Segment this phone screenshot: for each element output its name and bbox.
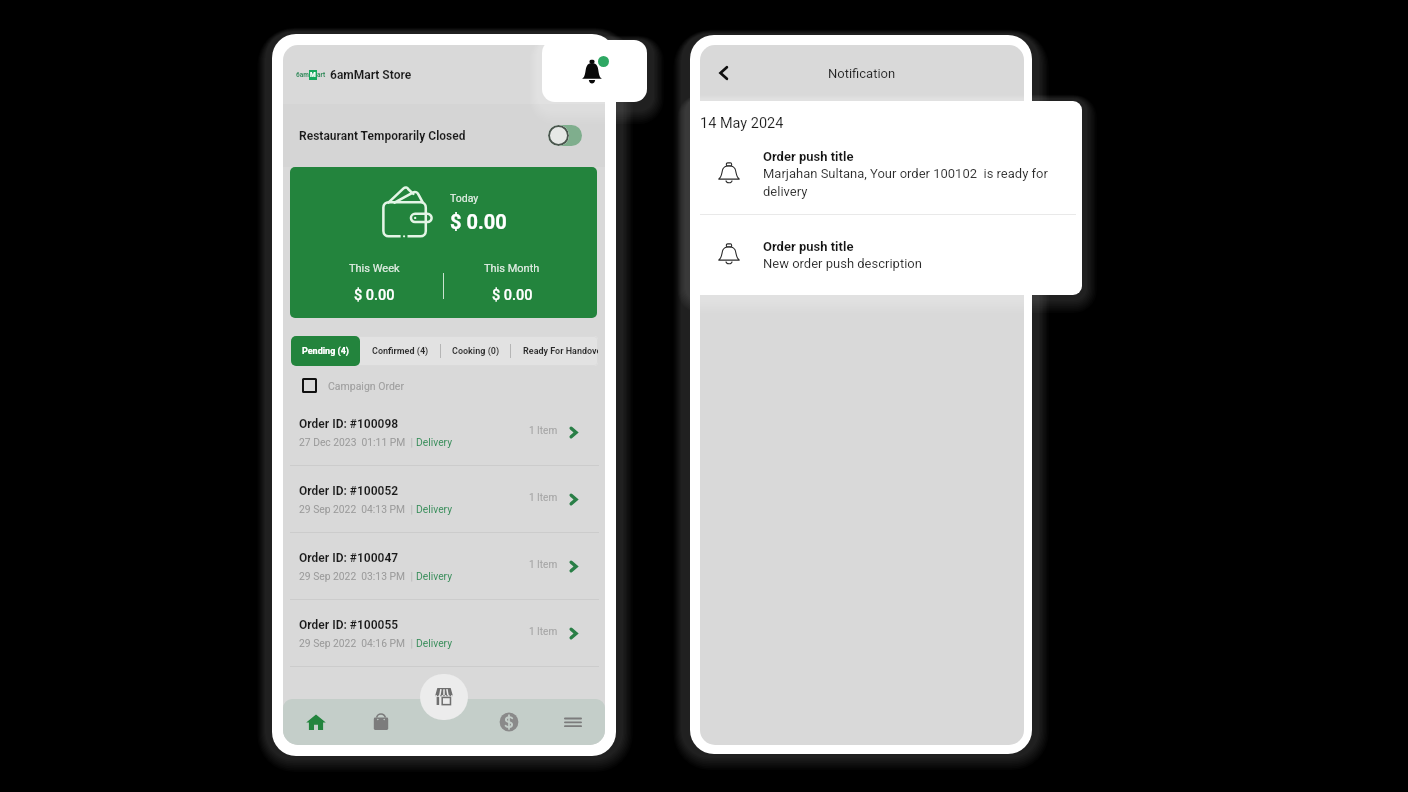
staticText: Restaurant Temporarily Closed xyxy=(299,129,466,143)
button[interactable]: Order ID: #100047 xyxy=(283,533,605,600)
staticText: Campaign Order xyxy=(328,380,404,392)
button[interactable]: Order ID: #100098 xyxy=(283,399,605,466)
button[interactable]: Notifications xyxy=(542,40,647,102)
button[interactable]: Toggle store open xyxy=(548,125,582,146)
button[interactable]: Restaurant Temporarily Closed xyxy=(283,104,605,167)
staticText: Ready For Handover xyxy=(523,346,598,357)
staticText: 29 Sep 2022 03:13 PM xyxy=(299,570,408,582)
staticText: Delivery xyxy=(416,570,453,582)
staticText: New order push description xyxy=(763,256,922,271)
button[interactable]: Ready For Handover xyxy=(511,336,598,366)
staticText: Order ID: #100047 xyxy=(299,551,399,565)
staticText: Order ID: #100052 xyxy=(299,484,399,498)
staticText: | xyxy=(408,436,416,448)
staticText: Delivery xyxy=(416,637,453,649)
staticText: 14 May 2024 xyxy=(700,115,784,132)
staticText: | xyxy=(408,503,416,515)
staticText: Order push title xyxy=(763,239,854,254)
staticText: Cooking (0) xyxy=(452,346,500,357)
button[interactable]: Order push title xyxy=(717,133,1050,214)
button[interactable]: Cooking (0) xyxy=(441,336,510,366)
button[interactable]: Order ID: #100055 xyxy=(283,600,605,667)
button[interactable]: Confirmed (4) xyxy=(360,336,440,366)
button[interactable]: Home xyxy=(283,699,348,745)
staticText: This Month xyxy=(484,262,540,275)
staticText: 27 Dec 2023 01:11 PM xyxy=(299,436,408,448)
staticText: $ 0.00 xyxy=(450,210,507,233)
staticText: 29 Sep 2022 04:16 PM xyxy=(299,637,408,649)
staticText: $ 0.00 xyxy=(492,287,533,304)
staticText: Today xyxy=(450,192,479,204)
staticText: 6amMart Store xyxy=(330,68,412,82)
button[interactable]: Back xyxy=(710,59,738,87)
staticText: | xyxy=(408,637,416,649)
staticText: Confirmed (4) xyxy=(372,346,429,357)
button[interactable]: Order push title xyxy=(717,215,1050,295)
staticText: 1 Item xyxy=(529,492,558,504)
staticText: Order ID: #100098 xyxy=(299,417,399,431)
staticText: 1 Item xyxy=(529,559,558,571)
staticText: Delivery xyxy=(416,503,453,515)
staticText: $ 0.00 xyxy=(354,287,395,304)
button[interactable]: Pending (4) xyxy=(291,336,360,366)
button[interactable]: Campaign Order xyxy=(302,375,605,396)
staticText: Notification xyxy=(828,66,896,81)
staticText: 1 Item xyxy=(529,626,558,638)
staticText: Order push title xyxy=(763,149,854,164)
staticText: 29 Sep 2022 04:13 PM xyxy=(299,503,408,515)
staticText: 1 Item xyxy=(529,425,558,437)
staticText: | xyxy=(408,570,416,582)
staticText: 6am xyxy=(296,71,309,79)
staticText: Pending (4) xyxy=(302,346,349,357)
staticText: art xyxy=(317,71,326,79)
button[interactable]: Orders xyxy=(348,699,413,745)
button[interactable]: Wallet xyxy=(477,699,541,745)
staticText: M xyxy=(310,71,316,79)
button[interactable]: Menu xyxy=(541,699,605,745)
button[interactable]: Order ID: #100052 xyxy=(283,466,605,533)
staticText: Marjahan Sultana, Your order 100102 is r… xyxy=(763,166,1050,199)
button[interactable]: Store xyxy=(420,674,468,720)
staticText: Order ID: #100055 xyxy=(299,618,399,632)
staticText: This Week xyxy=(349,262,400,275)
staticText: Delivery xyxy=(416,436,453,448)
